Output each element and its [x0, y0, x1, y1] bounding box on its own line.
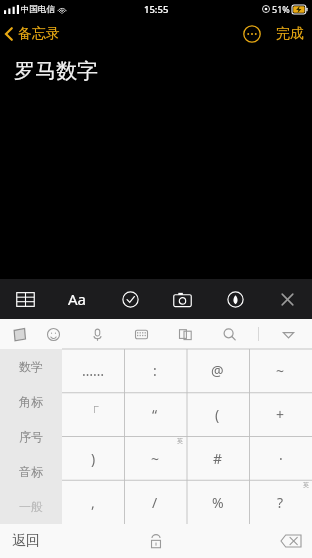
button[interactable]: Translate [174, 323, 196, 345]
button[interactable]: Emoji [42, 323, 64, 345]
staticText: ~ [151, 449, 160, 468]
staticText: ~ [276, 361, 285, 380]
staticText: “ [152, 405, 158, 424]
button[interactable]: + [249, 392, 312, 436]
button[interactable]: Close [274, 286, 300, 312]
staticText: 51% [272, 3, 290, 15]
button[interactable]: 角标 [0, 384, 62, 419]
button[interactable]: Backspace [278, 531, 304, 551]
button[interactable]: 备忘录 [0, 21, 68, 47]
staticText: % [212, 493, 224, 512]
button[interactable]: 数学 [0, 349, 62, 384]
staticText: Aa [68, 289, 87, 309]
button[interactable]: 「 [62, 392, 124, 436]
button[interactable]: More options [242, 24, 262, 44]
button[interactable]: · [249, 436, 312, 480]
staticText: + [276, 405, 285, 424]
staticText: ) [91, 449, 96, 468]
staticText: 英 [177, 437, 183, 445]
staticText: 中国电信 [21, 4, 55, 15]
button[interactable]: Sogou input [8, 323, 30, 345]
staticText: 数学 [19, 359, 43, 374]
staticText: 音标 [19, 464, 43, 479]
button[interactable]: Keyboard layout [130, 323, 152, 345]
button[interactable]: 完成 [274, 21, 306, 47]
staticText: …… [82, 361, 105, 380]
button[interactable]: Table [12, 286, 38, 312]
button[interactable]: @ [186, 349, 249, 392]
staticText: ( [215, 405, 220, 424]
button[interactable]: 音标 [0, 454, 62, 489]
staticText: ? [277, 493, 284, 512]
button[interactable]: Hide keyboard [277, 323, 299, 345]
button[interactable]: Lock [143, 528, 169, 554]
button[interactable]: , [62, 480, 124, 524]
staticText: # [213, 449, 223, 468]
staticText: 英 [303, 481, 309, 489]
staticText: , [91, 493, 95, 512]
button[interactable]: : [124, 349, 186, 392]
button[interactable]: 序号 [0, 419, 62, 454]
staticText: 15:55 [144, 3, 169, 16]
staticText: 完成 [276, 25, 304, 43]
staticText: 序号 [19, 429, 43, 444]
button[interactable]: Checklist [117, 286, 143, 312]
button[interactable]: 返回 [0, 526, 52, 556]
button[interactable]: Voice input [86, 323, 108, 345]
button[interactable]: ? [249, 480, 312, 524]
staticText: 返回 [12, 532, 40, 550]
button[interactable]: ) [62, 436, 124, 480]
button[interactable]: Markup [222, 286, 248, 312]
staticText: · [279, 449, 283, 468]
button[interactable]: Aa [64, 286, 90, 312]
button[interactable]: % [186, 480, 249, 524]
staticText: 一般 [19, 499, 43, 514]
staticText: 角标 [19, 394, 43, 409]
button[interactable]: 一般 [0, 489, 62, 524]
button[interactable]: Search [218, 323, 240, 345]
button[interactable]: ( [186, 392, 249, 436]
staticText: / [152, 493, 158, 512]
staticText: 「 [86, 405, 100, 423]
button[interactable]: “ [124, 392, 186, 436]
button[interactable]: ~ [124, 436, 186, 480]
staticText: 备忘录 [18, 25, 60, 43]
button[interactable]: Camera [169, 286, 195, 312]
button[interactable]: # [186, 436, 249, 480]
staticText: @ [211, 361, 224, 380]
staticText: 罗马数字 [14, 58, 98, 84]
button[interactable]: ~ [249, 349, 312, 392]
button[interactable]: …… [62, 349, 124, 392]
button[interactable]: / [124, 480, 186, 524]
staticText: : [153, 361, 157, 380]
